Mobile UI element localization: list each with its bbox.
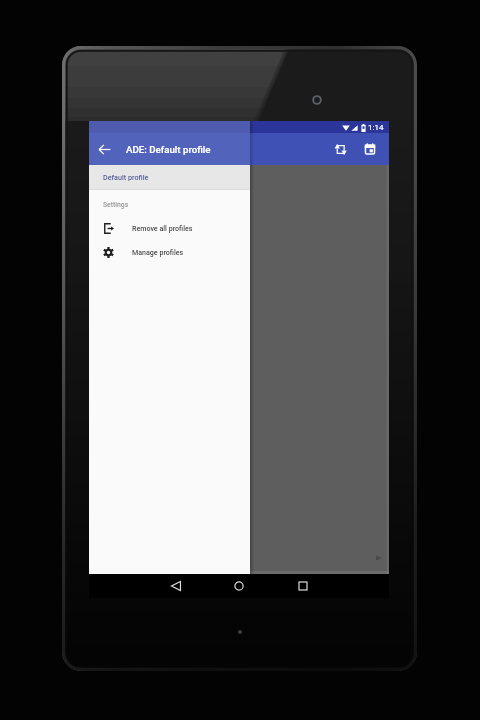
button[interactable]: Recent apps bbox=[281, 574, 325, 598]
staticText: Manage profiles bbox=[132, 248, 184, 256]
button[interactable]: Back bbox=[154, 574, 198, 598]
button[interactable]: Default profile bbox=[89, 165, 250, 189]
button[interactable]: Repeat bbox=[325, 133, 355, 165]
staticText: Settings bbox=[103, 201, 129, 209]
staticText: 1:14 bbox=[368, 123, 384, 132]
staticText: Default profile bbox=[103, 173, 149, 181]
staticText: Remove all profiles bbox=[132, 224, 193, 232]
button[interactable]: Home bbox=[217, 574, 261, 598]
button[interactable]: Navigate up bbox=[89, 133, 119, 165]
staticText: ADE: Default profile bbox=[126, 144, 211, 155]
button[interactable]: Calendar bbox=[355, 133, 385, 165]
button[interactable]: Remove all profiles bbox=[89, 216, 250, 240]
button[interactable]: Manage profiles bbox=[89, 240, 250, 264]
